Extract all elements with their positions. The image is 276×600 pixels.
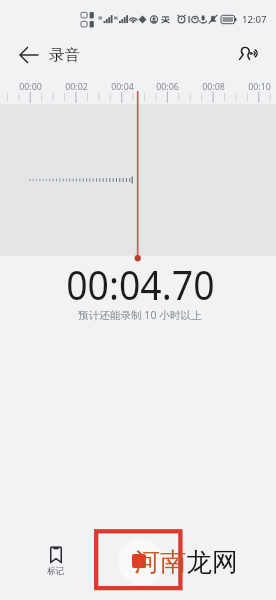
staticText: 00:10: [248, 81, 271, 93]
staticText: 录音: [49, 45, 80, 65]
staticText: 河南龙网: [134, 546, 238, 579]
button[interactable]: Voice to text: [226, 30, 270, 74]
staticText: 00:06: [156, 81, 179, 93]
staticText: 00:04.70: [66, 257, 215, 311]
staticText: 预计还能录制 10 小时以上: [78, 308, 202, 322]
staticText: 00:02: [65, 81, 88, 93]
button[interactable]: 标记: [36, 545, 76, 577]
staticText: 标记: [47, 566, 65, 577]
staticText: 00:00: [19, 81, 42, 93]
staticText: 00:08: [202, 81, 225, 93]
button[interactable]: Back: [7, 33, 51, 77]
staticText: 12:07: [242, 13, 267, 26]
staticText: 00:04: [111, 81, 134, 93]
button[interactable]: Stop recording: [118, 539, 164, 585]
